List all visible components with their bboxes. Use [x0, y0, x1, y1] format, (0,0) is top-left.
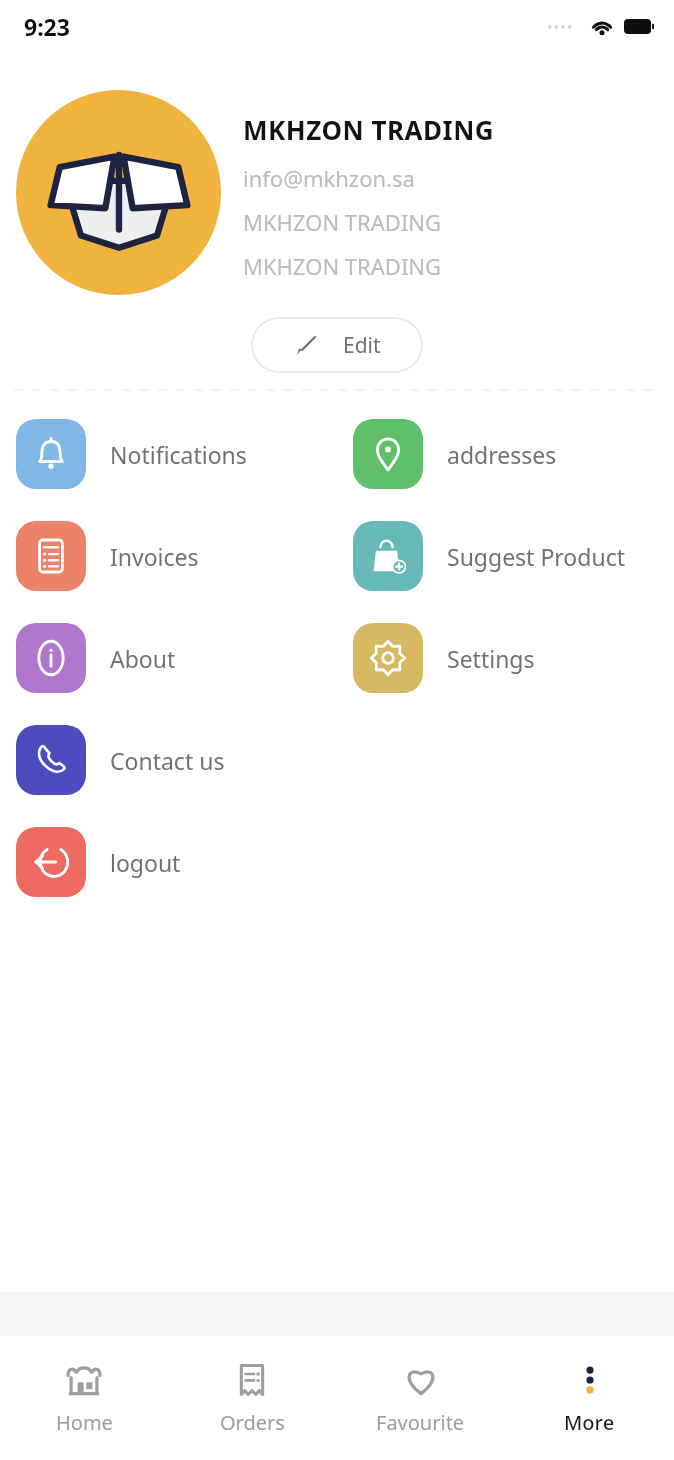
button[interactable]: Home — [0, 1336, 168, 1460]
button[interactable]: Notifications — [0, 403, 337, 505]
staticText: Home — [56, 1409, 113, 1436]
staticText: Invoices — [110, 541, 199, 572]
other: Settings — [353, 623, 423, 693]
other: Addresses — [353, 419, 423, 489]
staticText: More — [564, 1409, 615, 1436]
staticText: info@mkhzon.sa — [243, 163, 415, 193]
other: Suggest Product — [353, 521, 423, 591]
button[interactable]: Contact us — [0, 709, 337, 811]
button[interactable]: Suggest Product — [337, 505, 674, 607]
button[interactable]: Logout — [0, 811, 337, 913]
staticText: Orders — [220, 1409, 285, 1436]
button[interactable]: Settings — [337, 607, 674, 709]
staticText: Edit — [343, 331, 381, 360]
button[interactable]: Orders — [168, 1336, 336, 1460]
button[interactable]: About — [0, 607, 337, 709]
button[interactable]: More — [505, 1336, 674, 1460]
other: Invoices — [16, 521, 86, 591]
staticText: About — [110, 643, 176, 674]
button[interactable]: Addresses — [337, 403, 674, 505]
staticText: MKHZON TRADING — [243, 112, 495, 147]
staticText: Favourite — [376, 1409, 465, 1436]
staticText: logout — [110, 847, 181, 878]
other: Contact us — [16, 725, 86, 795]
other: About — [16, 623, 86, 693]
staticText: MKHZON TRADING — [243, 207, 442, 237]
button[interactable]: Invoices — [0, 505, 337, 607]
staticText: 9:23 — [24, 11, 70, 42]
button[interactable]: Edit — [251, 317, 423, 373]
staticText: MKHZON TRADING — [243, 251, 442, 281]
other: Notifications — [16, 419, 86, 489]
staticText: Suggest Product — [447, 541, 625, 572]
staticText: addresses — [447, 439, 557, 470]
staticText: Contact us — [110, 745, 225, 776]
staticText: Settings — [447, 643, 535, 674]
staticText: Notifications — [110, 439, 247, 470]
button[interactable]: Favourite — [336, 1336, 505, 1460]
other: Logout — [16, 827, 86, 897]
